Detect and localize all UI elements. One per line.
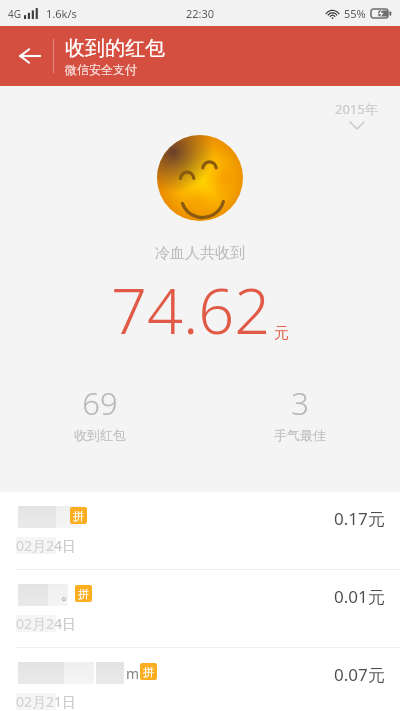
staticText: 69 [82,382,118,424]
staticText: 元 [274,324,289,343]
staticText: 拼 [73,509,84,523]
staticText: 拼 [143,665,154,679]
staticText: 4G [8,7,21,21]
staticText: 微信安全支付 [65,62,137,77]
staticText: 0.17元 [334,507,385,530]
staticText: 冷血人共收到 [155,244,245,263]
staticText: 手气最佳 [274,427,326,443]
staticText: 。 [61,586,75,604]
button[interactable]: 2015年 [335,100,378,129]
staticText: 22:30 [186,6,215,21]
staticText: 02月24日 [16,614,77,633]
staticText: 0.01元 [334,585,385,608]
button[interactable]: m [0,647,400,711]
button[interactable]: 。 [0,569,400,647]
staticText: 拼 [78,587,89,601]
staticText: m [126,664,140,683]
staticText: 02月21日 [16,692,77,711]
button[interactable]: 69 [0,382,200,443]
staticText: 55% [344,6,366,21]
staticText: 74.62 [111,267,271,353]
button[interactable]: Back [6,32,54,80]
staticText: 收到红包 [74,427,126,443]
staticText: 0.07元 [334,663,385,686]
button[interactable]: 拼 [0,492,400,569]
staticText: 2015年 [335,100,378,118]
staticText: 收到的红包 [65,36,165,61]
button[interactable]: 3 [200,382,400,443]
staticText: 3 [291,382,309,424]
staticText: 1.6k/s [46,6,77,21]
staticText: 02月24日 [16,536,77,555]
